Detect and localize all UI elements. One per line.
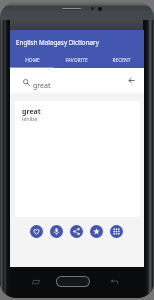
button[interactable]: great	[15, 101, 140, 217]
staticText: FAVORITE	[65, 57, 88, 64]
button[interactable]: FAVORITE	[54, 57, 99, 64]
button[interactable]: RECENT	[99, 57, 144, 64]
button[interactable]: Add to favourites	[90, 225, 103, 238]
button[interactable]: Back	[126, 75, 137, 86]
staticText: great	[33, 81, 51, 91]
button[interactable]: Share	[70, 225, 83, 238]
button[interactable]: Voice search	[50, 225, 63, 238]
button[interactable]: All words	[110, 225, 123, 238]
staticText: HOME	[25, 57, 40, 64]
button[interactable]: Favourite	[30, 225, 43, 238]
staticText: RECENT	[112, 57, 131, 64]
staticText: lehibe	[22, 115, 38, 122]
button[interactable]: HOME	[10, 57, 54, 64]
staticText: English Malagasy Dictionary	[16, 38, 99, 47]
staticText: great	[22, 107, 41, 117]
